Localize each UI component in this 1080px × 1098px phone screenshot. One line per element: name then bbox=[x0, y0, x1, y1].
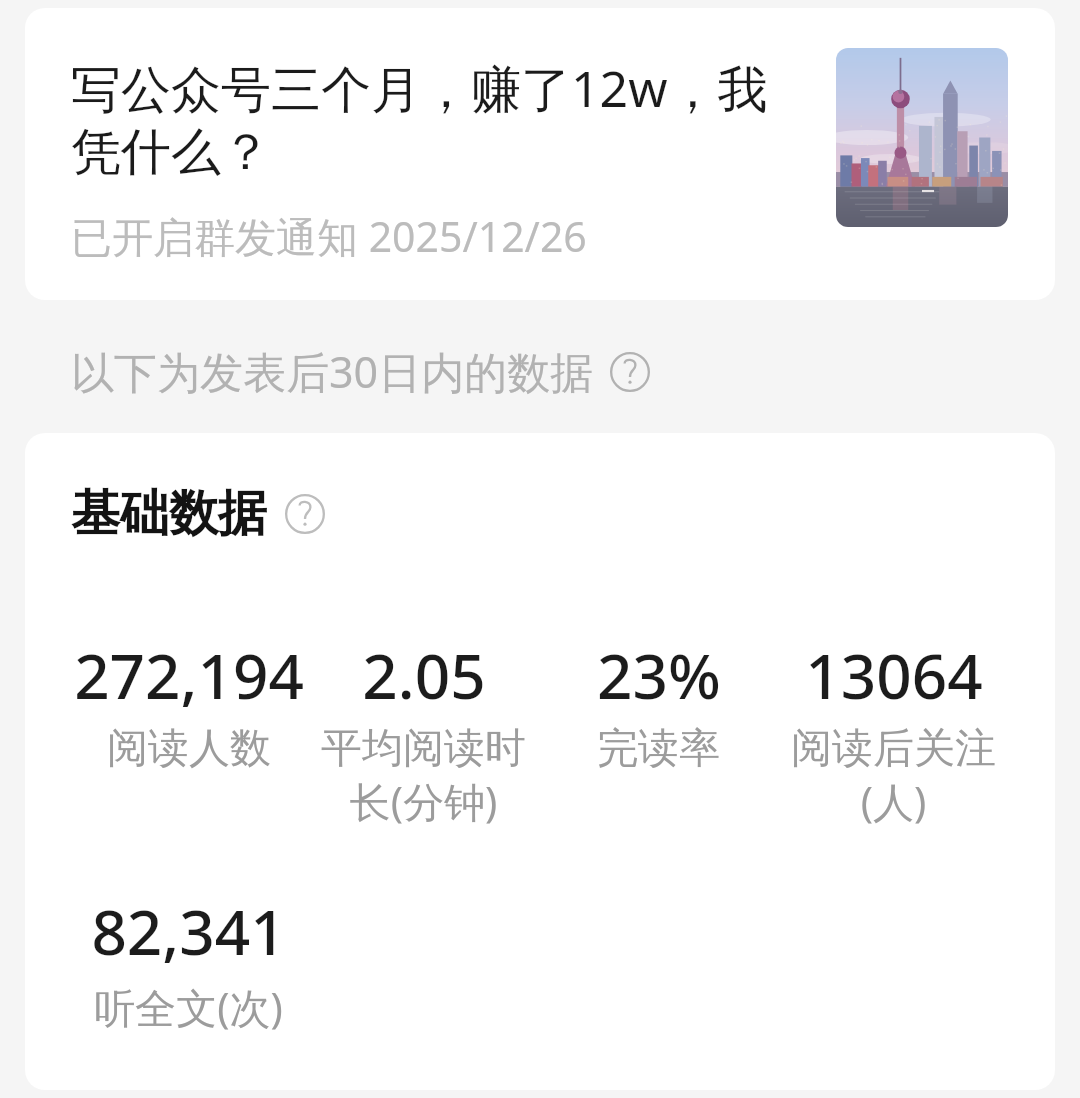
button[interactable]: 数据说明 bbox=[610, 352, 650, 392]
button[interactable]: 以下为发表后30日内的数据 bbox=[71, 342, 650, 401]
staticText: 阅读后关注(人) bbox=[776, 723, 1011, 829]
staticText: 23% bbox=[597, 633, 721, 717]
button[interactable]: 82,341 bbox=[71, 889, 306, 1035]
staticText: 写公众号三个月，赚了12w，我凭什么？ bbox=[71, 54, 812, 184]
button[interactable]: 文章封面图 bbox=[836, 48, 1008, 227]
staticText: 82,341 bbox=[91, 889, 286, 973]
staticText: 272,194 bbox=[74, 633, 304, 717]
staticText: 阅读人数 bbox=[107, 723, 271, 775]
staticText: 13064 bbox=[805, 633, 983, 717]
staticText: 平均阅读时长(分钟) bbox=[306, 723, 541, 829]
staticText: 听全文(次) bbox=[94, 979, 283, 1035]
button[interactable]: 2.05 bbox=[306, 633, 541, 829]
button[interactable]: 272,194 bbox=[71, 633, 306, 775]
staticText: 基础数据 bbox=[71, 483, 267, 545]
staticText: 以下为发表后30日内的数据 bbox=[71, 342, 594, 401]
staticText: 完读率 bbox=[597, 723, 720, 775]
button[interactable]: 13064 bbox=[776, 633, 1011, 829]
staticText: 2.05 bbox=[362, 633, 486, 717]
staticText: 已开启群发通知 2025/12/26 bbox=[71, 208, 587, 264]
button[interactable]: 基础数据说明 bbox=[285, 494, 325, 534]
button[interactable]: 基础数据 bbox=[71, 483, 325, 545]
button[interactable]: 写公众号三个月，赚了12w，我凭什么？ bbox=[25, 8, 1055, 300]
button[interactable]: 23% bbox=[541, 633, 776, 775]
